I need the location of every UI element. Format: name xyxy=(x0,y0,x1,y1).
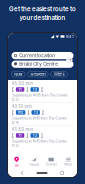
button[interactable]: Go xyxy=(8,155,25,169)
button[interactable]: Swap locations xyxy=(66,57,72,63)
staticText: 13 xyxy=(33,87,37,92)
staticText: Departing at 14:05 from The Centre (C5) xyxy=(11,93,67,102)
button[interactable]: 45:50 min xyxy=(8,126,77,149)
staticText: Departing at 14:10 from The Centre (C4) xyxy=(11,116,66,125)
staticText: your destination xyxy=(19,14,65,22)
staticText: T1 xyxy=(18,133,22,138)
button[interactable]: Current location xyxy=(11,52,73,59)
button[interactable]: 45:50 min xyxy=(8,80,77,103)
staticText: 45:50 min xyxy=(11,127,32,132)
staticText: Departing at 14:15 from The Centre (C5) xyxy=(11,139,66,148)
staticText: Bristol City Centre xyxy=(19,61,58,67)
staticText: Go xyxy=(15,163,19,167)
staticText: 13 xyxy=(33,133,37,138)
button[interactable]: Filters xyxy=(51,71,67,77)
staticText: Filters xyxy=(53,72,64,77)
button[interactable]: More xyxy=(60,155,77,169)
staticText: 13 xyxy=(34,110,38,115)
staticText: Current location xyxy=(19,53,55,58)
button[interactable]: Bristol City Centre xyxy=(11,61,73,68)
staticText: Travel xyxy=(29,163,39,167)
staticText: 45:50 min xyxy=(11,81,32,86)
staticText: m2 xyxy=(18,110,23,115)
button[interactable]: Travel xyxy=(25,155,42,169)
staticText: More xyxy=(64,162,72,166)
staticText: Now xyxy=(14,72,22,77)
button[interactable]: Between xyxy=(28,71,48,77)
button[interactable]: Now xyxy=(11,71,25,77)
staticText: 40:10 min xyxy=(11,104,31,109)
staticText: Get the easiest route to xyxy=(9,5,76,13)
staticText: T1 xyxy=(18,87,22,92)
button[interactable]: 40:10 min xyxy=(8,103,77,126)
staticText: 9:41 xyxy=(66,34,74,39)
button[interactable]: Tickets xyxy=(42,155,60,169)
staticText: Between xyxy=(30,72,45,77)
staticText: Tickets xyxy=(45,162,57,166)
